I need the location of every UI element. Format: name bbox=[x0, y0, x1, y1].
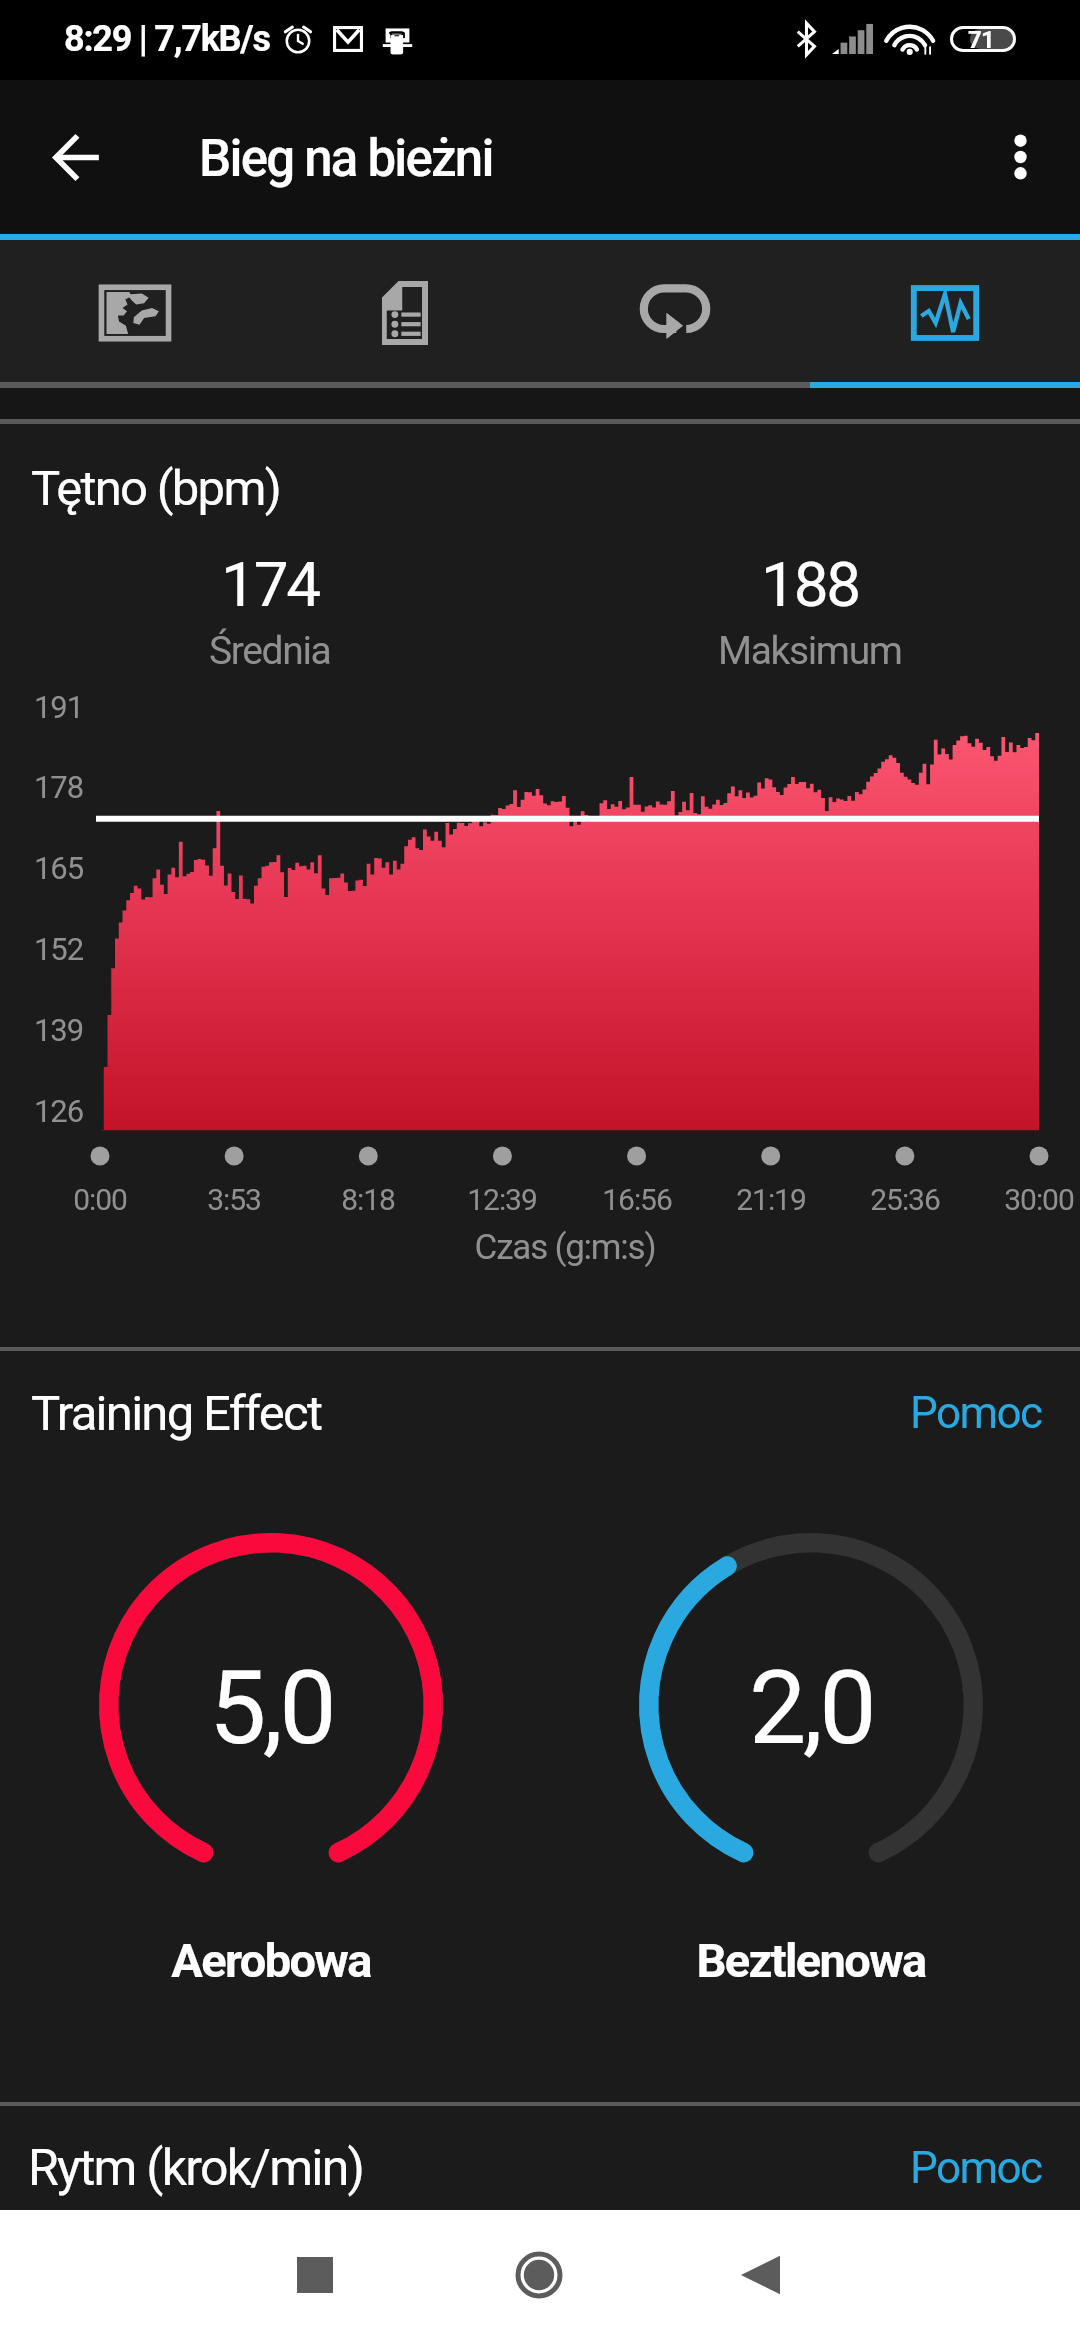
staticText: 5,0 bbox=[209, 1648, 334, 1768]
button[interactable]: Home bbox=[479, 2210, 599, 2340]
staticText: Czas (g:m:s) bbox=[365, 1227, 765, 1268]
staticText: 21:19 bbox=[701, 1182, 841, 1217]
staticText: 139 bbox=[34, 1012, 84, 1048]
staticText: 178 bbox=[34, 769, 84, 805]
button[interactable]: Laps bbox=[540, 240, 810, 388]
staticText: 25:36 bbox=[835, 1182, 975, 1217]
staticText: Aerobowa bbox=[71, 1933, 471, 1988]
staticText: Bieg na bieżni bbox=[199, 129, 493, 189]
button[interactable]: More options bbox=[972, 109, 1068, 205]
button[interactable]: Details bbox=[270, 240, 540, 388]
staticText: 3:53 bbox=[164, 1182, 304, 1217]
staticText: 126 bbox=[34, 1093, 84, 1129]
staticText: 8:29 | 7,7kB/s bbox=[64, 18, 270, 60]
staticText: Training Effect bbox=[31, 1385, 322, 1442]
staticText: 174 bbox=[221, 548, 320, 621]
staticText: Pomoc bbox=[910, 1387, 1042, 1439]
staticText: 16:56 bbox=[567, 1182, 707, 1217]
staticText: 71 bbox=[968, 26, 994, 52]
button[interactable]: Pomoc bbox=[898, 2136, 1054, 2200]
staticText: 30:00 bbox=[969, 1182, 1080, 1217]
button[interactable]: Back bbox=[700, 2210, 820, 2340]
staticText: 0:00 bbox=[30, 1182, 170, 1217]
button[interactable]: Recents bbox=[255, 2210, 375, 2340]
button[interactable]: Back bbox=[28, 109, 124, 205]
staticText: 8:18 bbox=[298, 1182, 438, 1217]
staticText: 165 bbox=[34, 850, 84, 886]
button[interactable]: Pomoc bbox=[898, 1381, 1054, 1445]
staticText: Średnia bbox=[209, 628, 331, 674]
staticText: 188 bbox=[761, 548, 860, 621]
staticText: 2,0 bbox=[749, 1648, 874, 1768]
staticText: Maksimum bbox=[718, 628, 902, 674]
staticText: 12:39 bbox=[432, 1182, 572, 1217]
button[interactable]: Map bbox=[0, 240, 270, 388]
staticText: Tętno (bpm) bbox=[31, 460, 281, 517]
staticText: Pomoc bbox=[910, 2142, 1042, 2194]
staticText: Rytm (krok/min) bbox=[28, 2139, 364, 2198]
staticText: 152 bbox=[34, 931, 84, 967]
staticText: Beztlenowa bbox=[611, 1933, 1011, 1988]
staticText: 191 bbox=[34, 689, 84, 725]
button[interactable]: Charts bbox=[810, 240, 1080, 388]
